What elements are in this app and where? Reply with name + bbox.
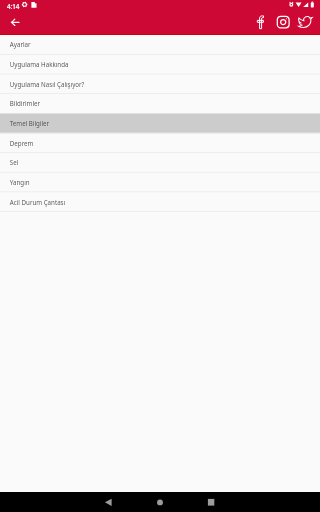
staticText: Temel Bilgiler [10, 119, 50, 127]
staticText: Ayarlar [10, 40, 31, 48]
button[interactable]: Yangın [0, 173, 320, 193]
staticText: Acil Durum Çantası [10, 197, 66, 205]
staticText: Uygulama Nasıl Çalışıyor? [10, 80, 85, 88]
staticText: Uygulama Hakkında [10, 60, 69, 68]
button[interactable]: Recent apps [192, 492, 232, 512]
button[interactable]: Home [140, 492, 180, 512]
button[interactable]: Temel Bilgiler [0, 114, 320, 134]
button[interactable]: Back [5, 14, 25, 34]
button[interactable]: Uygulama Nasıl Çalışıyor? [0, 74, 320, 94]
button[interactable]: Deprem [0, 133, 320, 153]
button[interactable]: Sel [0, 153, 320, 173]
button[interactable]: Back [88, 492, 128, 512]
staticText: Yangın [10, 178, 30, 186]
button[interactable]: Uygulama Hakkında [0, 55, 320, 75]
staticText: Deprem [10, 139, 34, 147]
button[interactable]: Bildirimler [0, 94, 320, 114]
staticText: Bildirimler [10, 99, 41, 107]
button[interactable]: Ayarlar [0, 35, 320, 55]
staticText: 4:14 [7, 2, 20, 10]
staticText: Sel [10, 158, 19, 166]
button[interactable]: Acil Durum Çantası [0, 192, 320, 212]
button[interactable]: Twitter [296, 14, 315, 34]
button[interactable]: Instagram [274, 14, 292, 34]
button[interactable]: Facebook [252, 14, 270, 34]
